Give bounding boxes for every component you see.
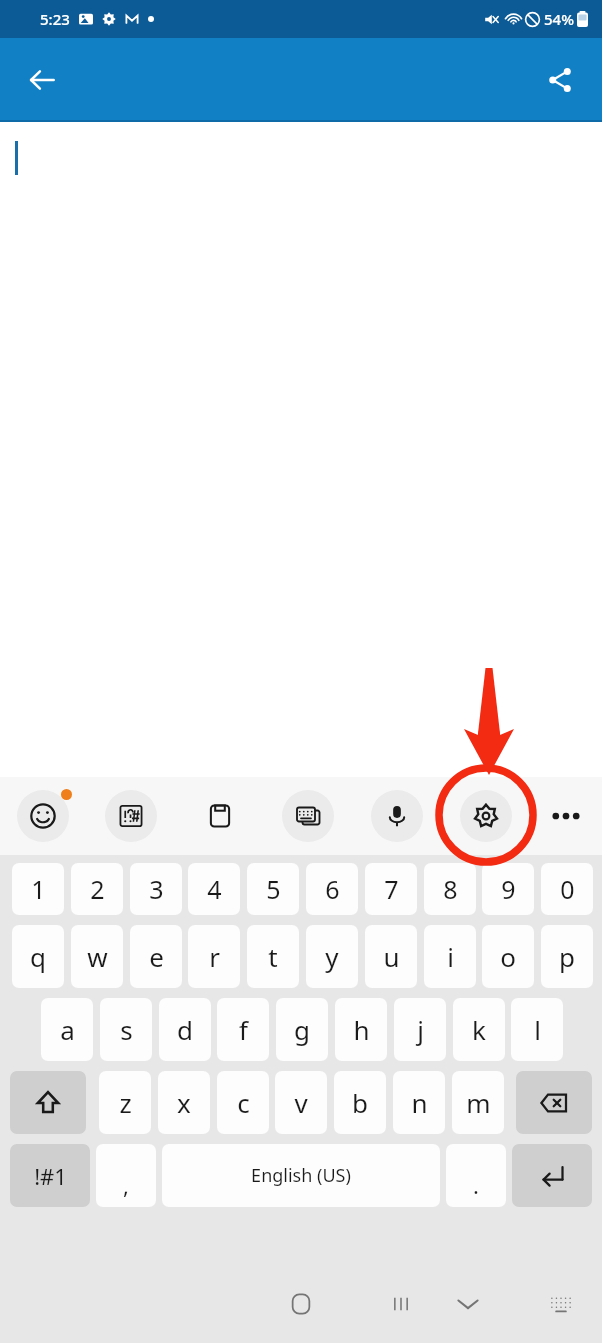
button[interactable]: 9 <box>482 863 534 915</box>
button[interactable]: a <box>41 998 93 1061</box>
button[interactable]: c <box>217 1071 269 1134</box>
button[interactable]: Symbols <box>105 790 157 842</box>
staticText: 54% <box>544 9 574 29</box>
button[interactable]: 6 <box>306 863 358 915</box>
button[interactable]: b <box>334 1071 386 1134</box>
button[interactable]: Backspace <box>516 1071 592 1134</box>
button[interactable]: l <box>511 998 563 1061</box>
staticText: 2 <box>90 872 105 906</box>
staticText: b <box>352 1085 368 1120</box>
button[interactable]: m <box>452 1071 504 1134</box>
button[interactable]: !#1 <box>10 1144 90 1207</box>
staticText: v <box>294 1085 308 1120</box>
staticText: c <box>237 1085 250 1120</box>
button[interactable]: English (US) <box>162 1144 440 1207</box>
button[interactable]: More options <box>546 803 586 829</box>
button[interactable]: 1 <box>12 863 64 915</box>
button[interactable]: r <box>188 925 240 988</box>
button[interactable]: v <box>275 1071 327 1134</box>
staticText: i <box>447 939 454 974</box>
staticText: s <box>120 1012 133 1047</box>
button[interactable]: 2 <box>71 863 123 915</box>
button[interactable]: p <box>541 925 593 988</box>
button[interactable]: , <box>96 1144 156 1207</box>
staticText: 6 <box>325 872 340 906</box>
button[interactable]: 4 <box>188 863 240 915</box>
button[interactable]: Clipboard <box>194 790 246 842</box>
staticText: l <box>534 1012 541 1047</box>
button[interactable]: g <box>276 998 328 1061</box>
staticText: m <box>466 1085 491 1120</box>
button[interactable]: e <box>130 925 182 988</box>
button[interactable]: Home <box>266 1265 336 1343</box>
staticText: y <box>325 939 339 974</box>
button[interactable]: Recents <box>100 1265 602 1343</box>
staticText: g <box>294 1012 310 1047</box>
button[interactable]: x <box>158 1071 210 1134</box>
button[interactable]: z <box>99 1071 151 1134</box>
staticText: 0 <box>560 872 575 906</box>
button[interactable]: i <box>424 925 476 988</box>
button[interactable]: y <box>306 925 358 988</box>
staticText: 5:23 <box>40 9 70 29</box>
button[interactable]: k <box>453 998 505 1061</box>
button[interactable]: j <box>394 998 446 1061</box>
staticText: t <box>268 939 278 974</box>
button[interactable]: q <box>12 925 64 988</box>
staticText: 9 <box>501 872 516 906</box>
button[interactable]: Keyboard settings <box>460 790 512 842</box>
staticText: q <box>30 939 46 974</box>
staticText: n <box>411 1085 428 1120</box>
button[interactable]: Enter <box>512 1144 592 1207</box>
staticText: e <box>149 939 164 974</box>
staticText: 3 <box>149 872 164 906</box>
button[interactable]: . <box>446 1144 506 1207</box>
button[interactable]: t <box>247 925 299 988</box>
button[interactable]: n <box>393 1071 445 1134</box>
staticText: z <box>119 1085 132 1120</box>
button[interactable]: Share <box>532 52 588 108</box>
button[interactable]: 0 <box>541 863 593 915</box>
staticText: !#1 <box>34 1161 67 1191</box>
staticText: 1 <box>31 872 46 906</box>
button[interactable]: d <box>159 998 211 1061</box>
staticText: 8 <box>443 872 458 906</box>
button[interactable]: u <box>365 925 417 988</box>
button[interactable]: Voice input <box>371 790 423 842</box>
button[interactable]: o <box>482 925 534 988</box>
staticText: w <box>87 939 108 974</box>
staticText: u <box>383 939 400 974</box>
button[interactable]: w <box>71 925 123 988</box>
button[interactable]: h <box>335 998 387 1061</box>
staticText: a <box>60 1012 75 1047</box>
staticText: j <box>417 1012 424 1047</box>
staticText: r <box>209 939 220 974</box>
staticText: d <box>177 1012 193 1047</box>
staticText: h <box>353 1012 370 1047</box>
staticText: 5 <box>266 872 281 906</box>
staticText: f <box>239 1012 248 1047</box>
staticText: p <box>559 939 575 974</box>
button[interactable]: Hide keyboard <box>436 1265 500 1343</box>
staticText: k <box>472 1012 486 1047</box>
button[interactable]: Shift <box>10 1071 86 1134</box>
button[interactable]: 8 <box>424 863 476 915</box>
button[interactable]: 3 <box>130 863 182 915</box>
button[interactable]: Back <box>14 52 70 108</box>
staticText: x <box>177 1085 191 1120</box>
button[interactable]: 7 <box>365 863 417 915</box>
staticText: o <box>500 939 516 974</box>
button[interactable]: Emoji <box>17 790 69 842</box>
staticText: 4 <box>207 872 222 906</box>
staticText: 7 <box>384 872 399 906</box>
button[interactable]: Keyboard modes <box>282 790 334 842</box>
button[interactable]: f <box>217 998 269 1061</box>
button[interactable]: Change keyboard <box>532 1265 590 1343</box>
staticText: , <box>123 1170 129 1200</box>
button[interactable]: s <box>100 998 152 1061</box>
staticText: . <box>473 1170 479 1200</box>
button[interactable]: 5 <box>247 863 299 915</box>
staticText: English (US) <box>251 1163 351 1188</box>
